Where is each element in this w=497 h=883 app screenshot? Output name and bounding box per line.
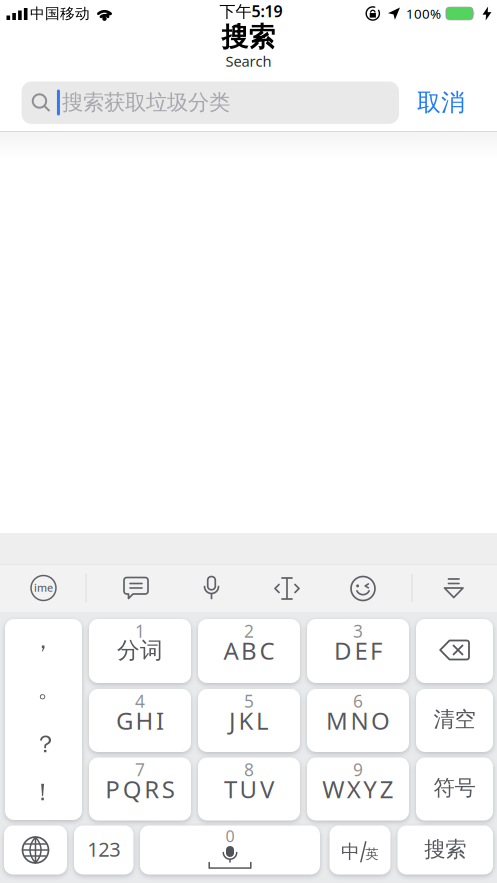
staticText: 搜索 bbox=[221, 21, 275, 53]
button[interactable]: 6 bbox=[307, 689, 409, 752]
staticText: 9 bbox=[353, 758, 363, 781]
button[interactable]: 常用语 bbox=[119, 573, 153, 603]
staticText: 6 bbox=[353, 689, 363, 712]
staticText: DEF bbox=[334, 635, 382, 666]
button[interactable]: 输入法 bbox=[28, 573, 58, 603]
staticText: Search bbox=[225, 51, 271, 71]
staticText: 分词 bbox=[117, 637, 163, 664]
button[interactable]: 3 bbox=[307, 619, 409, 683]
staticText: ime bbox=[34, 580, 53, 595]
staticText: 5 bbox=[244, 689, 254, 712]
staticText: 4 bbox=[135, 689, 145, 712]
staticText: 中国移动 bbox=[30, 4, 90, 22]
staticText: 1 bbox=[135, 619, 145, 642]
staticText: 123 bbox=[87, 836, 120, 862]
button[interactable]: ， bbox=[5, 619, 82, 820]
staticText: 符号 bbox=[433, 775, 475, 801]
button[interactable]: 切换输入法 bbox=[4, 825, 67, 874]
staticText: GHI bbox=[116, 705, 164, 736]
staticText: MNO bbox=[326, 705, 390, 736]
staticText: 搜索 bbox=[424, 836, 466, 863]
button[interactable]: 7 bbox=[89, 757, 191, 820]
staticText: ？ bbox=[33, 730, 57, 759]
staticText: 0 bbox=[225, 825, 234, 847]
button[interactable]: 删除 bbox=[416, 619, 493, 683]
button[interactable]: 表情 bbox=[348, 573, 378, 603]
button[interactable]: 搜索 bbox=[397, 825, 493, 874]
staticText: 2 bbox=[244, 619, 254, 642]
button[interactable]: 光标移动 bbox=[271, 573, 303, 603]
staticText: 搜索获取垃圾分类 bbox=[62, 89, 230, 116]
staticText: 英 bbox=[365, 846, 378, 862]
staticText: 3 bbox=[353, 619, 363, 642]
button[interactable]: 收起键盘 bbox=[439, 573, 467, 603]
staticText: 取消 bbox=[417, 88, 465, 117]
staticText: ， bbox=[31, 626, 55, 655]
staticText: ABC bbox=[223, 635, 274, 666]
button[interactable]: 语音输入 bbox=[197, 573, 225, 603]
button[interactable]: 9 bbox=[307, 757, 409, 820]
button[interactable]: 清空 bbox=[416, 689, 493, 752]
button[interactable]: 搜索获取垃圾分类 bbox=[22, 81, 399, 124]
button[interactable]: 取消 bbox=[406, 81, 476, 123]
staticText: 清空 bbox=[433, 706, 475, 733]
button[interactable]: 中 bbox=[329, 825, 390, 874]
button[interactable]: 语音输入 bbox=[140, 825, 320, 874]
staticText: ！ bbox=[31, 777, 55, 807]
button[interactable]: 符号 bbox=[416, 757, 493, 820]
button[interactable]: 123 bbox=[74, 825, 133, 874]
button[interactable]: 4 bbox=[89, 689, 191, 752]
staticText: 。 bbox=[37, 674, 61, 703]
button[interactable]: 1 bbox=[89, 619, 191, 683]
staticText: PQRS bbox=[105, 773, 175, 805]
button[interactable]: 2 bbox=[198, 619, 300, 683]
staticText: JKL bbox=[229, 705, 269, 736]
button[interactable]: 8 bbox=[198, 757, 300, 820]
staticText: 8 bbox=[244, 758, 254, 781]
staticText: 中 bbox=[341, 840, 360, 863]
staticText: 下午5:19 bbox=[219, 0, 282, 22]
staticText: TUV bbox=[224, 773, 274, 805]
staticText: 100% bbox=[406, 5, 441, 22]
staticText: 7 bbox=[135, 758, 145, 781]
staticText: WXYZ bbox=[322, 773, 394, 805]
button[interactable]: 5 bbox=[198, 689, 300, 752]
